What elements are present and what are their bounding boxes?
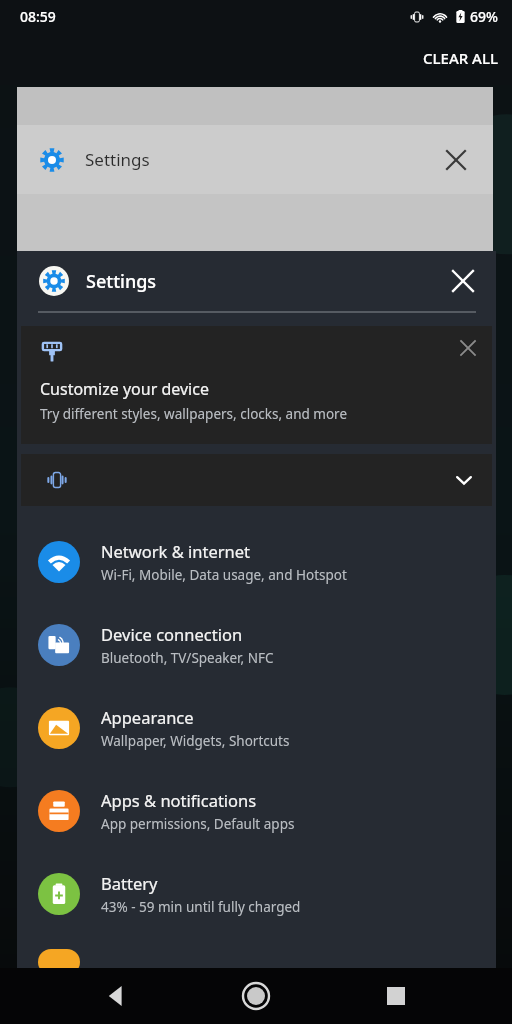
button[interactable]: Close [444,262,482,300]
staticText: CLEAR ALL [423,48,498,68]
staticText: Customize your device [40,378,209,400]
button[interactable]: Settings [17,87,493,251]
button[interactable]: Home [232,972,280,1020]
button[interactable]: Apps & notifications [17,769,496,852]
button[interactable] [17,935,496,975]
button[interactable]: Expand [21,454,492,506]
button[interactable]: Dismiss suggestion [452,332,484,364]
button[interactable]: Customize your device [21,326,492,444]
staticText: Wi-Fi, Mobile, Data usage, and Hotspot [101,566,347,584]
staticText: Appearance [101,706,194,728]
staticText: Settings [86,269,157,294]
staticText: Network & internet [101,540,251,562]
staticText: Apps & notifications [101,789,257,811]
staticText: Try different styles, wallpapers, clocks… [40,405,348,423]
staticText: Settings [85,148,150,171]
button[interactable]: Device connection [17,603,496,686]
staticText: 08:59 [20,7,56,26]
button[interactable]: Recents [372,972,420,1020]
button[interactable]: Battery [17,852,496,935]
button[interactable]: Expand [446,462,482,498]
staticText: Device connection [101,623,243,645]
button[interactable]: Close [441,145,471,175]
button[interactable]: Network & internet [17,520,496,603]
staticText: Wallpaper, Widgets, Shortcuts [101,732,290,750]
staticText: Battery [101,872,158,894]
button[interactable]: Settings [17,251,496,311]
staticText: App permissions, Default apps [101,815,295,833]
button[interactable]: Back [92,972,140,1020]
staticText: Bluetooth, TV/Speaker, NFC [101,649,274,667]
staticText: 69% [470,7,498,26]
staticText: 43% - 59 min until fully charged [101,898,301,916]
button[interactable]: CLEAR ALL [409,42,512,74]
button[interactable]: Appearance [17,686,496,769]
